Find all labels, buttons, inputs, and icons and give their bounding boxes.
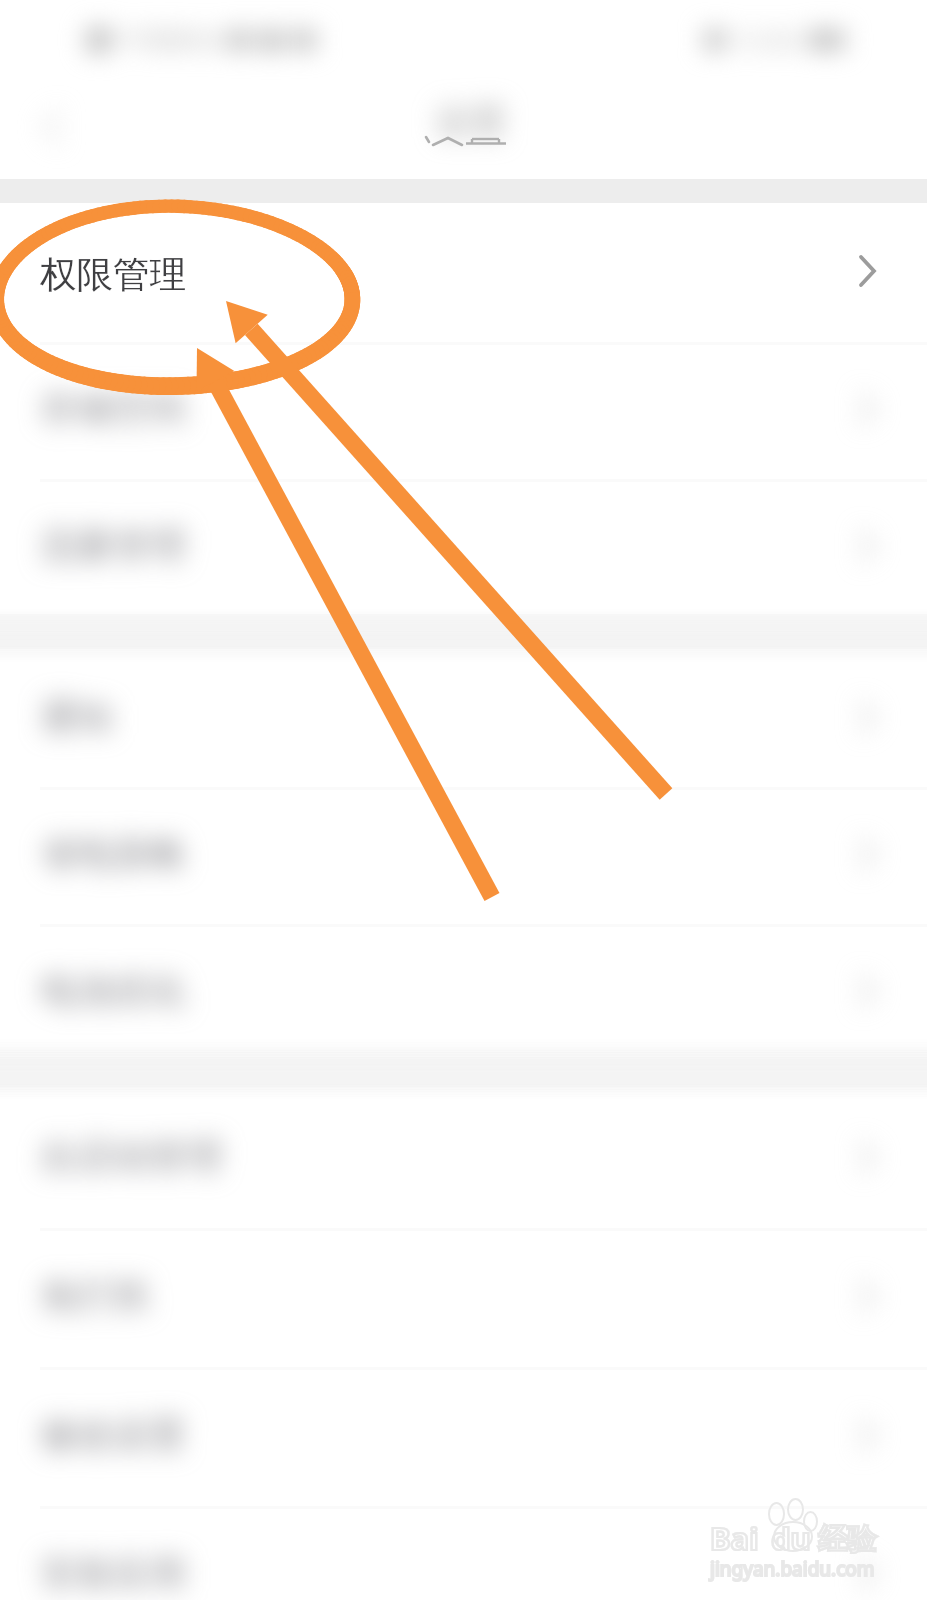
button[interactable]: 免打扰	[0, 1226, 927, 1365]
staticText: 设置	[435, 99, 507, 144]
staticText: du	[771, 1517, 811, 1559]
staticText: Bai	[710, 1517, 759, 1559]
button[interactable]: 电池优化	[0, 922, 927, 1059]
staticText: 自启动管理	[40, 1134, 223, 1180]
other: Permission management	[859, 255, 876, 287]
staticText: 免打扰	[40, 1273, 150, 1319]
staticText: 修改设置	[40, 1412, 186, 1458]
staticText: 权限管理	[40, 252, 186, 298]
button[interactable]: 权限管理	[0, 203, 927, 340]
button[interactable]: 权限管理	[0, 203, 927, 339]
staticText: jingyan.baidu.com	[710, 1556, 875, 1582]
staticText: 通知	[40, 694, 113, 740]
button[interactable]: 修改设置	[0, 1365, 927, 1504]
staticText: 经验	[818, 1521, 876, 1558]
staticText: 省电策略	[40, 831, 186, 877]
button[interactable]: 自启动管理	[0, 1087, 927, 1226]
staticText: 权限管理	[40, 249, 186, 295]
button[interactable]: 省电策略	[0, 785, 927, 922]
staticText: 存储空间	[40, 386, 186, 432]
button[interactable]: 存储空间	[0, 340, 927, 477]
button[interactable]: 安装应用	[0, 1504, 927, 1600]
button[interactable]: 流量管理	[0, 477, 927, 614]
staticText: 电池优化	[40, 968, 186, 1014]
staticText: 安装应用	[40, 1551, 186, 1597]
staticText: 流量管理	[40, 523, 186, 569]
button[interactable]: 通知	[0, 648, 927, 785]
